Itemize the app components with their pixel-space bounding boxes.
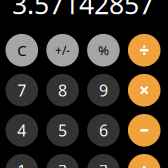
button[interactable]: Add	[128, 154, 160, 168]
staticText: %	[98, 41, 109, 59]
button[interactable]: 4	[5, 114, 38, 147]
button[interactable]: C	[5, 34, 38, 66]
button[interactable]: 9	[87, 74, 120, 106]
staticText: 5	[58, 120, 67, 141]
button[interactable]: Divide	[128, 34, 160, 66]
staticText: 6	[99, 120, 108, 141]
staticText: 7	[17, 80, 26, 101]
staticText: 4	[17, 120, 26, 141]
button[interactable]: %	[87, 34, 120, 66]
button[interactable]: 3	[87, 154, 120, 168]
button[interactable]: 8	[46, 74, 79, 106]
staticText: 2	[58, 160, 67, 168]
staticText: 9	[99, 80, 108, 101]
button[interactable]: 6	[87, 114, 120, 147]
button[interactable]: 7	[5, 74, 38, 106]
staticText: 1	[17, 160, 26, 168]
staticText: C	[17, 40, 26, 60]
button[interactable]: 1	[5, 154, 38, 168]
button[interactable]: 2	[46, 154, 79, 168]
button[interactable]: Multiply	[128, 74, 160, 106]
button[interactable]: 5	[46, 114, 79, 147]
staticText: 8	[58, 80, 67, 101]
staticText: 3	[99, 160, 108, 168]
button[interactable]: Subtract	[128, 114, 160, 147]
button[interactable]: +/-	[46, 34, 79, 66]
staticText: +/-	[55, 42, 70, 58]
staticText: 3.57142857	[12, 0, 154, 22]
